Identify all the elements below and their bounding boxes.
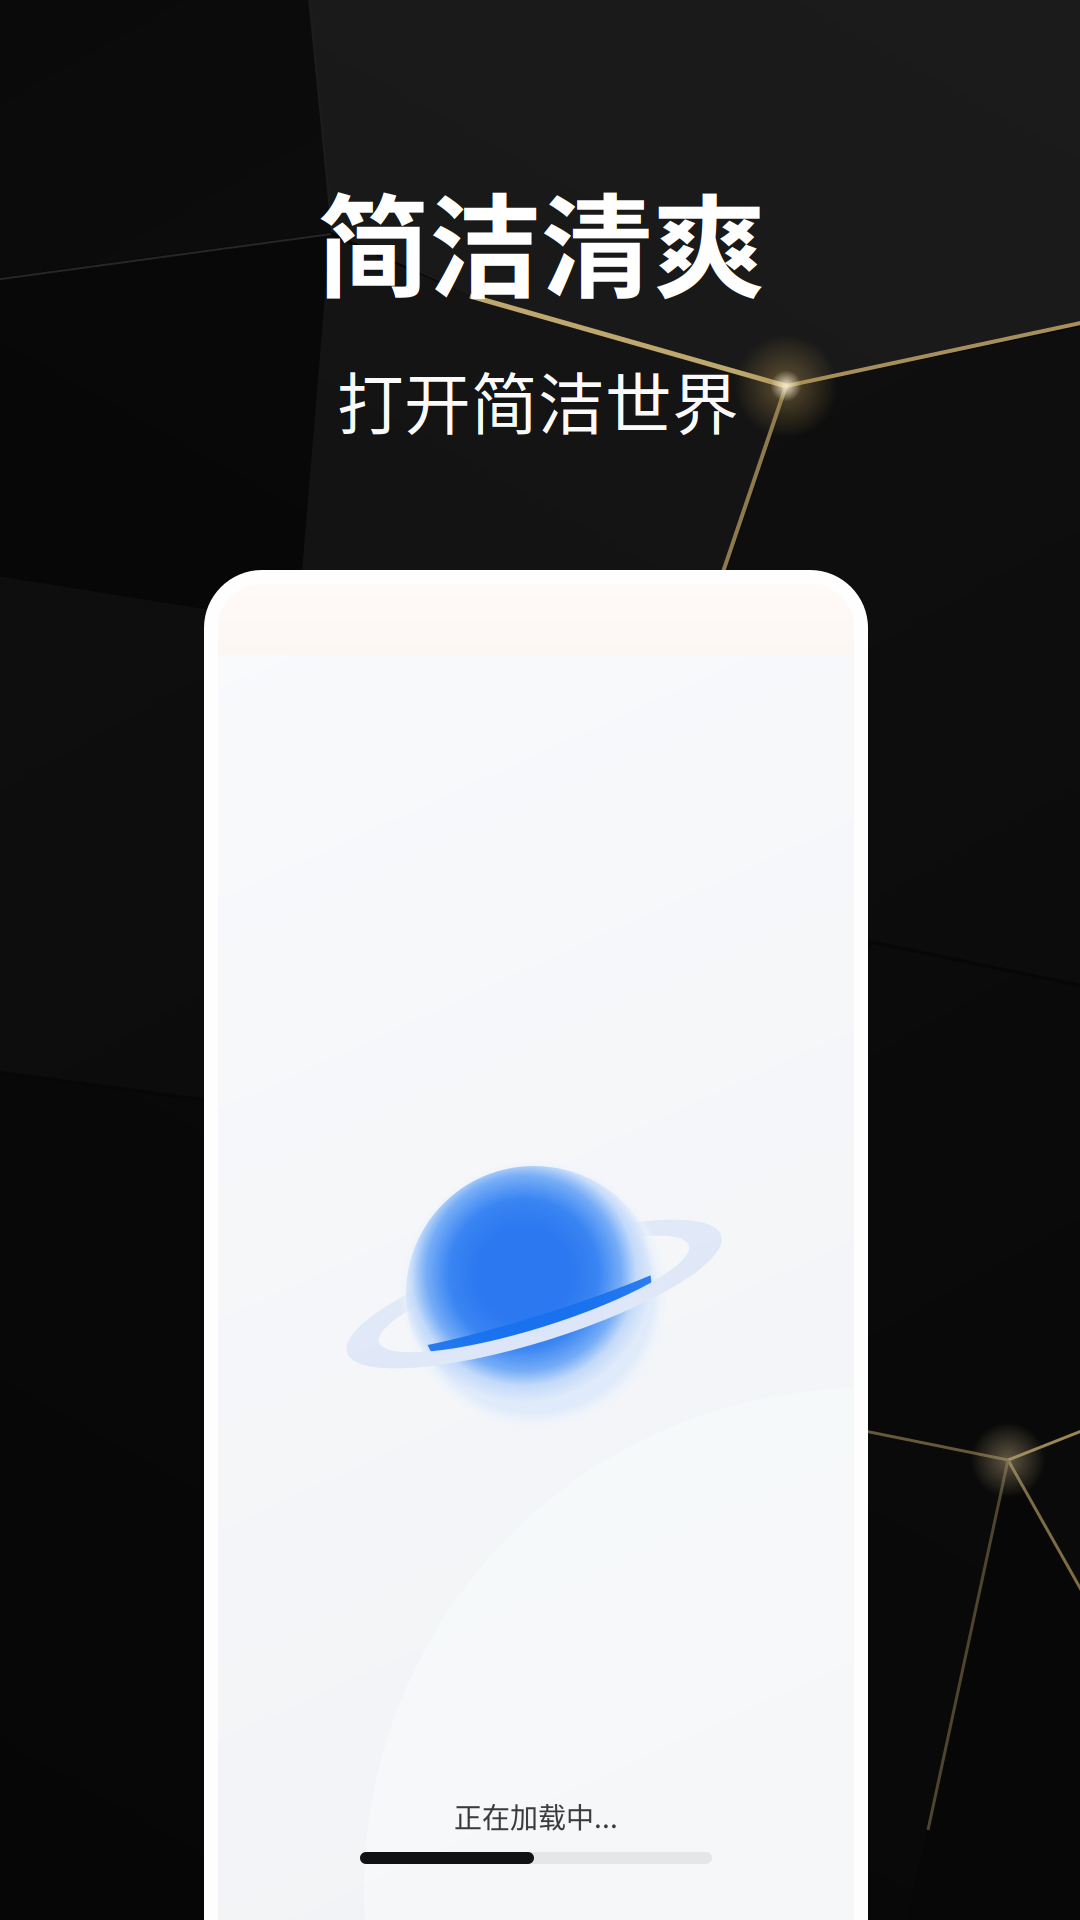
button[interactable]: Loading progress bbox=[360, 1852, 712, 1864]
staticText: 打开简洁世界 bbox=[337, 352, 739, 448]
staticText: 简洁清爽 bbox=[317, 159, 765, 321]
staticText: 正在加载中... bbox=[454, 1796, 618, 1836]
